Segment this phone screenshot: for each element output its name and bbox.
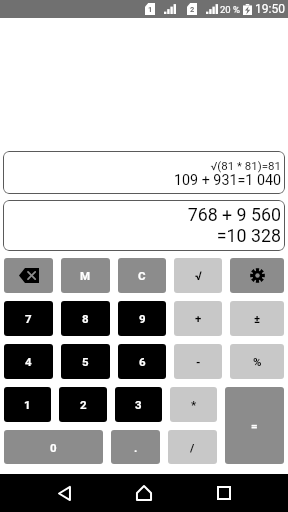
staticText: 6: [139, 355, 146, 368]
staticText: M: [80, 269, 91, 282]
staticText: 2: [190, 5, 195, 14]
staticText: √(81 * 81)=81: [210, 159, 281, 172]
button[interactable]: =: [225, 387, 284, 464]
button[interactable]: %: [230, 344, 284, 379]
button[interactable]: Back: [40, 474, 88, 512]
button[interactable]: 6: [118, 344, 166, 379]
staticText: +: [195, 312, 202, 325]
button[interactable]: *: [170, 387, 217, 422]
button[interactable]: Recent apps: [200, 474, 248, 512]
button[interactable]: 8: [61, 301, 110, 336]
button[interactable]: 0: [4, 430, 103, 464]
staticText: 7: [25, 312, 32, 325]
staticText: 9: [139, 312, 146, 325]
staticText: ±: [254, 312, 261, 325]
button[interactable]: Home: [120, 474, 168, 512]
staticText: 5: [82, 355, 89, 368]
button[interactable]: 1: [4, 387, 51, 422]
button[interactable]: 768 + 9 560: [3, 200, 285, 251]
staticText: √: [195, 269, 202, 283]
button[interactable]: 2: [59, 387, 107, 422]
staticText: C: [138, 269, 146, 282]
staticText: 2: [80, 398, 87, 411]
button[interactable]: C: [118, 258, 166, 293]
button[interactable]: +: [174, 301, 222, 336]
staticText: 768 + 9 560: [187, 204, 281, 225]
button[interactable]: 5: [61, 344, 110, 379]
button[interactable]: 3: [115, 387, 162, 422]
staticText: 20 %: [220, 4, 240, 15]
staticText: =: [251, 419, 258, 432]
button[interactable]: ±: [230, 301, 284, 336]
button[interactable]: 9: [118, 301, 166, 336]
button[interactable]: .: [111, 430, 160, 464]
button[interactable]: 4: [4, 344, 53, 379]
button[interactable]: 7: [4, 301, 53, 336]
button[interactable]: Backspace: [4, 258, 53, 293]
staticText: .: [134, 441, 138, 454]
staticText: -: [196, 355, 201, 368]
button[interactable]: Settings: [230, 258, 284, 293]
button[interactable]: -: [174, 344, 222, 379]
staticText: =10 328: [216, 225, 281, 246]
staticText: %: [253, 355, 262, 368]
staticText: 1: [148, 5, 153, 14]
button[interactable]: /: [168, 430, 217, 464]
button[interactable]: M: [61, 258, 110, 293]
staticText: *: [191, 398, 197, 411]
staticText: 0: [50, 441, 57, 454]
staticText: 8: [82, 312, 89, 325]
button[interactable]: √: [174, 258, 222, 293]
staticText: 1: [24, 398, 31, 411]
staticText: /: [190, 441, 195, 454]
button[interactable]: √(81 * 81)=81: [3, 151, 285, 194]
staticText: 19:50: [255, 2, 285, 16]
staticText: 4: [25, 355, 32, 368]
staticText: 3: [135, 398, 142, 411]
staticText: 109 + 931=1 040: [174, 172, 281, 189]
